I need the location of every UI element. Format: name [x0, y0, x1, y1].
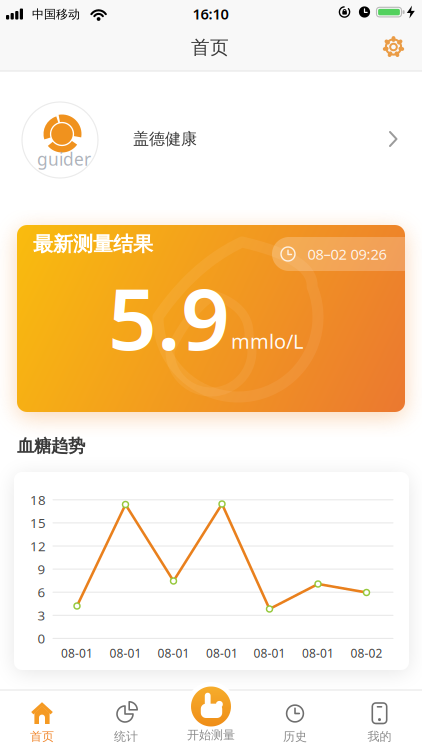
staticText: 08–02 09:26 [307, 244, 386, 264]
button[interactable]: 统计 [84, 690, 168, 748]
staticText: 08-01 [253, 645, 285, 661]
staticText: 统计 [114, 729, 138, 744]
staticText: 18 [30, 491, 46, 509]
staticText: mmlo/L [231, 328, 303, 354]
staticText: 15 [30, 514, 46, 532]
staticText: 首页 [30, 729, 54, 744]
staticText: 08-02 [350, 645, 382, 661]
button[interactable]: 开始测量 [180, 681, 242, 743]
staticText: 3 [37, 606, 45, 624]
staticText: 盖德健康 [133, 129, 197, 149]
staticText: 开始测量 [187, 728, 235, 742]
staticText: 历史 [283, 729, 307, 744]
staticText: 0 [37, 629, 45, 647]
staticText: 12 [30, 537, 46, 555]
staticText: 中国移动 [32, 7, 80, 21]
button[interactable]: 首页 [0, 690, 84, 748]
staticText: 08-01 [109, 645, 141, 661]
staticText: 最新测量结果 [33, 232, 153, 256]
staticText: 首页 [191, 36, 229, 59]
staticText: 08-01 [302, 645, 334, 661]
staticText: 08-01 [61, 645, 93, 661]
staticText: 5.9 [108, 260, 230, 374]
button[interactable]: 我的 [337, 690, 421, 748]
staticText: 血糖趋势 [17, 435, 85, 457]
staticText: 6 [37, 583, 45, 601]
staticText: 我的 [367, 729, 391, 744]
button[interactable]: guider [0, 72, 422, 208]
button[interactable] [371, 26, 415, 68]
button[interactable]: 历史 [253, 690, 337, 748]
staticText: guider [37, 147, 91, 170]
staticText: 9 [37, 560, 45, 578]
staticText: 08-01 [206, 645, 238, 661]
staticText: 16:10 [192, 4, 228, 24]
staticText: 08-01 [157, 645, 189, 661]
